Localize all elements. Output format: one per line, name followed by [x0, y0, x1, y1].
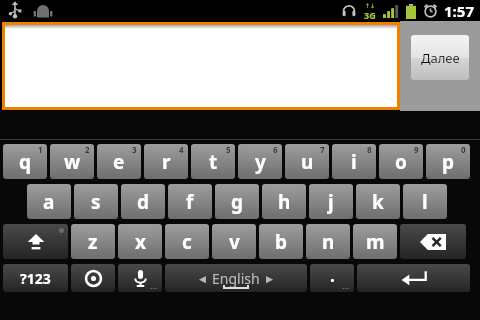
button[interactable]: b: [259, 224, 303, 259]
button[interactable]: k: [356, 184, 400, 219]
button[interactable]: ?123: [3, 264, 68, 292]
staticText: 2: [85, 144, 90, 155]
staticText: u: [301, 149, 314, 175]
staticText: y: [255, 149, 266, 175]
staticText: Далее: [421, 49, 460, 67]
button[interactable]: j: [309, 184, 353, 219]
staticText: s: [91, 189, 101, 215]
staticText: k: [372, 189, 384, 215]
staticText: h: [278, 189, 291, 215]
staticText: r: [162, 149, 171, 175]
button[interactable]: [5, 25, 397, 107]
staticText: x: [135, 229, 146, 255]
staticText: 3G: [364, 9, 376, 21]
staticText: 5: [226, 144, 231, 155]
button[interactable]: t: [191, 144, 235, 179]
staticText: t: [209, 149, 218, 175]
button[interactable]: q: [3, 144, 47, 179]
staticText: 3: [132, 144, 137, 155]
staticText: .: [330, 264, 335, 285]
button[interactable]: c: [165, 224, 209, 259]
staticText: English: [212, 269, 260, 288]
staticText: ↑↓: [365, 2, 376, 9]
staticText: 4: [179, 144, 184, 155]
button[interactable]: Space: [165, 264, 307, 292]
button[interactable]: g: [215, 184, 259, 219]
button[interactable]: o: [379, 144, 423, 179]
staticText: 6: [273, 144, 278, 155]
button[interactable]: Shift: [3, 224, 68, 259]
button[interactable]: Далее: [411, 35, 469, 80]
button[interactable]: f: [168, 184, 212, 219]
button[interactable]: h: [262, 184, 306, 219]
staticText: ▶: [266, 274, 273, 284]
button[interactable]: w: [50, 144, 94, 179]
staticText: ?123: [20, 269, 51, 288]
staticText: p: [442, 149, 455, 175]
button[interactable]: r: [144, 144, 188, 179]
button[interactable]: x: [118, 224, 162, 259]
button[interactable]: n: [306, 224, 350, 259]
staticText: m: [366, 229, 385, 255]
staticText: 9: [414, 144, 419, 155]
button[interactable]: y: [238, 144, 282, 179]
button[interactable]: Voice input: [118, 264, 162, 292]
staticText: 8: [367, 144, 372, 155]
staticText: ...: [150, 279, 158, 291]
button[interactable]: Input method settings: [71, 264, 115, 292]
button[interactable]: Backspace: [400, 224, 466, 259]
staticText: c: [182, 229, 192, 255]
button[interactable]: v: [212, 224, 256, 259]
staticText: d: [137, 189, 150, 215]
staticText: ◀: [199, 274, 206, 284]
button[interactable]: i: [332, 144, 376, 179]
staticText: o: [395, 149, 407, 175]
button[interactable]: Period: [310, 264, 354, 292]
staticText: l: [422, 189, 428, 215]
staticText: b: [275, 229, 288, 255]
button[interactable]: m: [353, 224, 397, 259]
staticText: j: [328, 189, 334, 215]
staticText: a: [43, 189, 55, 215]
staticText: 1:57: [444, 1, 474, 21]
staticText: w: [64, 149, 81, 175]
staticText: 7: [320, 144, 325, 155]
staticText: 1: [38, 144, 43, 155]
staticText: 0: [461, 144, 466, 155]
button[interactable]: d: [121, 184, 165, 219]
button[interactable]: s: [74, 184, 118, 219]
button[interactable]: l: [403, 184, 447, 219]
button[interactable]: u: [285, 144, 329, 179]
staticText: g: [231, 189, 244, 215]
button[interactable]: e: [97, 144, 141, 179]
staticText: q: [19, 149, 32, 175]
staticText: i: [351, 149, 357, 175]
button[interactable]: z: [71, 224, 115, 259]
staticText: ...: [342, 279, 350, 291]
button[interactable]: Enter: [357, 264, 470, 292]
staticText: e: [113, 149, 125, 175]
staticText: v: [229, 229, 240, 255]
button[interactable]: a: [27, 184, 71, 219]
staticText: n: [322, 229, 335, 255]
staticText: z: [88, 229, 98, 255]
staticText: f: [186, 189, 194, 215]
button[interactable]: p: [426, 144, 470, 179]
